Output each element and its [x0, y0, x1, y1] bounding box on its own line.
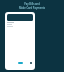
button[interactable] — [7, 14, 33, 21]
button[interactable]: Home — [18, 62, 23, 64]
staticText: Make Card Payments — [0, 6, 64, 10]
staticText: Pay Bills and — [0, 2, 64, 6]
